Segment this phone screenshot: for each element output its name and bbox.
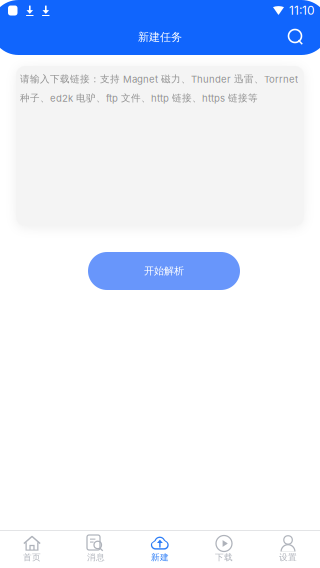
- button[interactable]: 开始解析: [88, 252, 240, 290]
- button[interactable]: 新建: [128, 531, 192, 568]
- button[interactable]: 设置: [256, 531, 320, 568]
- button[interactable]: 首页: [0, 531, 64, 568]
- button[interactable]: 消息: [64, 531, 128, 568]
- staticText: 消息: [87, 552, 105, 563]
- staticText: 11:10: [289, 3, 315, 18]
- button[interactable]: 搜索: [278, 19, 314, 55]
- staticText: 开始解析: [144, 265, 184, 277]
- staticText: 新建任务: [138, 30, 182, 44]
- button[interactable]: 下载: [192, 531, 256, 568]
- staticText: 下载: [215, 552, 233, 563]
- staticText: 首页: [23, 552, 41, 563]
- staticText: 种子、ed2k 电驴、ftp 文件、http 链接、https 链接等: [20, 92, 258, 104]
- staticText: 设置: [279, 552, 297, 563]
- staticText: 新建: [151, 552, 169, 563]
- staticText: 请输入下载链接：支持 Magnet 磁力、Thunder 迅雷、Torrnet: [20, 73, 298, 85]
